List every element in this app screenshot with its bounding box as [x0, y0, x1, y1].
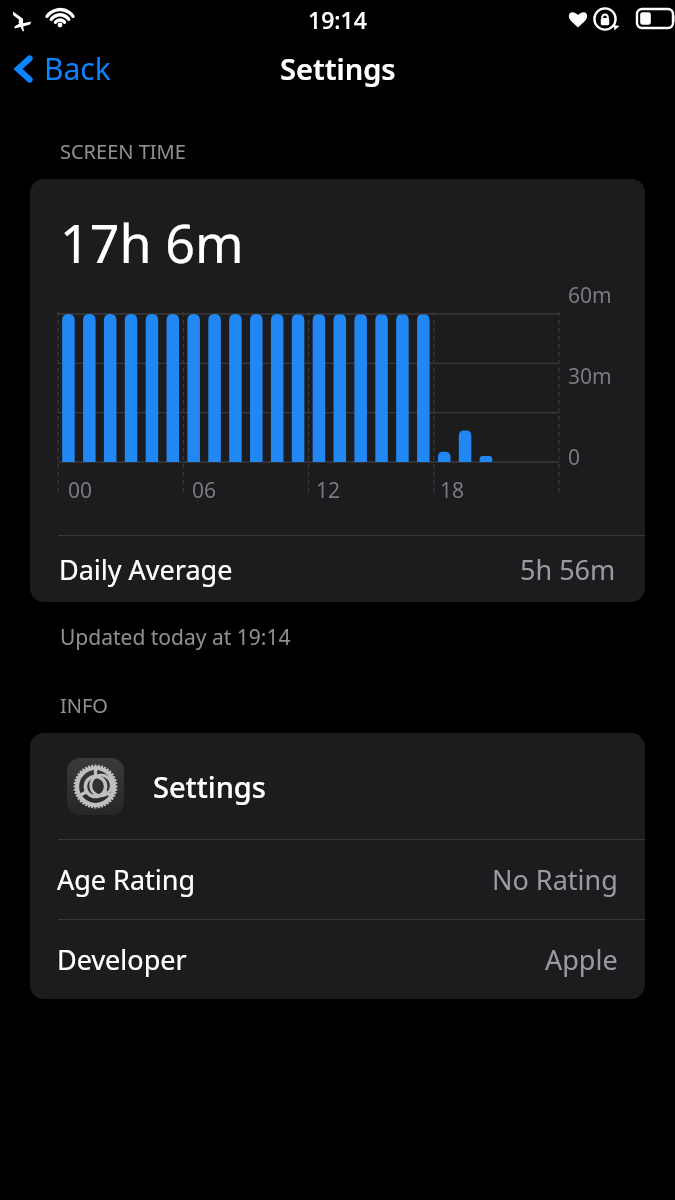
- staticText: INFO: [60, 692, 108, 719]
- button[interactable]: Daily Average: [30, 536, 645, 602]
- staticText: 19:14: [308, 4, 367, 35]
- staticText: SCREEN TIME: [60, 138, 186, 165]
- button[interactable]: Developer: [30, 920, 645, 999]
- button[interactable]: Back: [0, 42, 127, 95]
- staticText: 00: [68, 476, 93, 505]
- staticText: 18: [440, 476, 465, 505]
- staticText: No Rating: [492, 861, 618, 898]
- staticText: Developer: [57, 941, 187, 978]
- staticText: 60m: [568, 281, 612, 310]
- staticText: 5h 56m: [520, 551, 616, 588]
- button[interactable]: Age Rating: [30, 840, 645, 919]
- staticText: 0: [568, 443, 581, 472]
- staticText: Age Rating: [57, 861, 196, 898]
- staticText: Updated today at 19:14: [60, 623, 291, 652]
- staticText: Settings: [153, 767, 266, 806]
- staticText: 17h 6m: [60, 207, 244, 278]
- staticText: 12: [316, 476, 341, 505]
- staticText: Settings: [280, 49, 396, 88]
- button[interactable]: Settings app icon: [30, 733, 645, 839]
- other: Settings app icon: [67, 758, 124, 815]
- staticText: Back: [44, 48, 111, 89]
- staticText: Daily Average: [59, 551, 233, 588]
- staticText: 30m: [568, 362, 612, 391]
- staticText: Apple: [545, 941, 618, 978]
- staticText: 06: [192, 476, 217, 505]
